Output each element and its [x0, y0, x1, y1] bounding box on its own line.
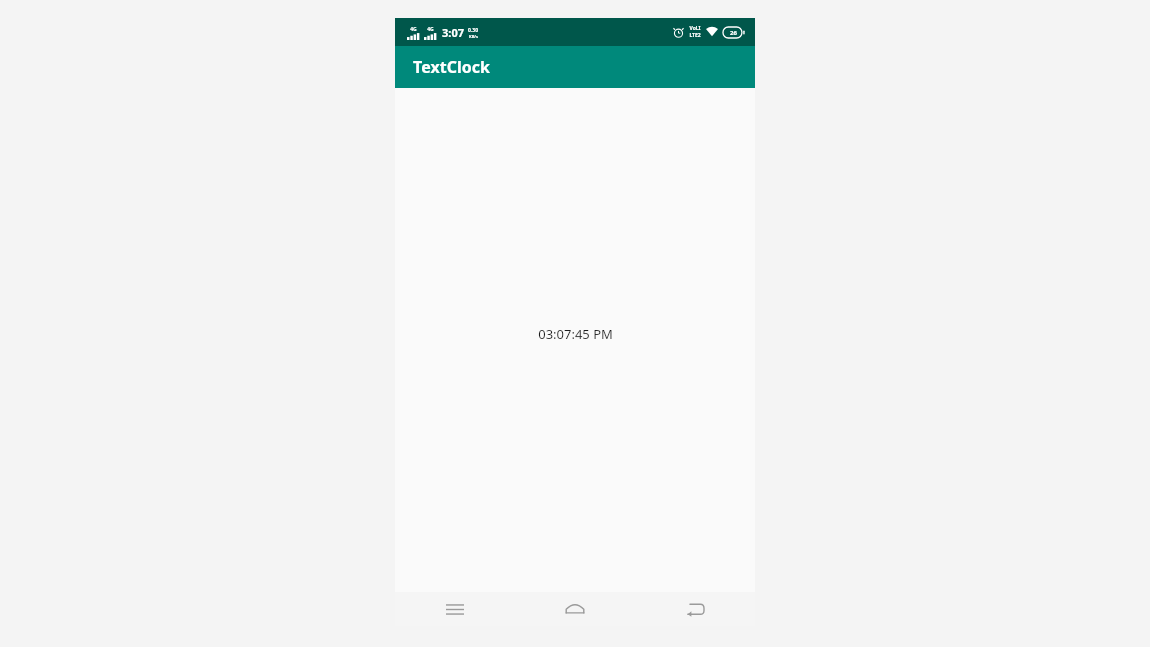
staticText: 3:07: [442, 25, 464, 40]
staticText: VoLI: [689, 25, 701, 32]
button[interactable]: Back: [635, 592, 755, 626]
button[interactable]: Home: [515, 592, 635, 626]
staticText: 4G: [427, 26, 434, 33]
button[interactable]: Recent apps: [395, 592, 515, 626]
staticText: 0.30: [468, 27, 478, 34]
staticText: 4G: [410, 26, 417, 33]
staticText: KB/s: [469, 34, 478, 39]
staticText: 26: [730, 29, 737, 37]
staticText: TextClock: [413, 56, 490, 78]
staticText: 03:07:45 PM: [538, 325, 613, 343]
staticText: LTE2: [689, 32, 701, 39]
